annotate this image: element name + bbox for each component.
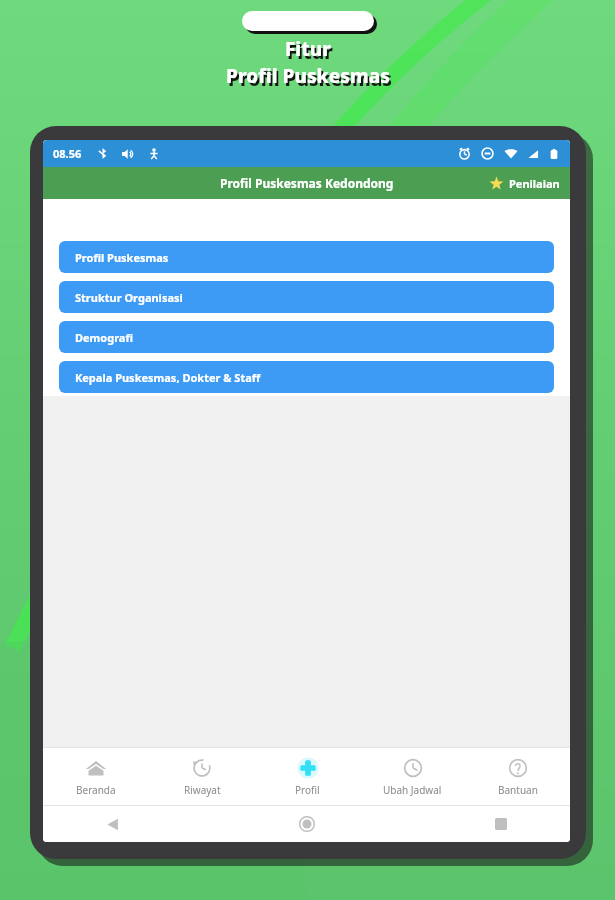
staticText: Kepala Puskesmas, Dokter & Staff <box>75 370 261 385</box>
staticText: Profil <box>295 783 320 797</box>
button[interactable]: Back <box>97 809 127 839</box>
staticText: Profil Puskesmas <box>226 63 390 89</box>
staticText: Ubah Jadwal <box>383 783 442 797</box>
staticText: Profil Puskesmas <box>228 66 392 92</box>
staticText: Bantuan <box>498 783 538 797</box>
staticText: Fitur <box>287 39 333 65</box>
button[interactable]: Struktur Organisasi <box>59 281 554 313</box>
staticText: Penilaian <box>509 176 560 191</box>
staticText: 08.56 <box>53 146 82 161</box>
button[interactable]: Kepala Puskesmas, Dokter & Staff <box>59 361 554 393</box>
button[interactable]: Riwayat <box>149 751 255 803</box>
button[interactable]: Bantuan <box>465 751 570 803</box>
button[interactable]: Ubah Jadwal <box>360 751 465 803</box>
button[interactable]: Demografi <box>59 321 554 353</box>
button[interactable]: Profil <box>255 751 360 803</box>
staticText: Demografi <box>75 330 133 345</box>
button[interactable]: Beranda <box>43 751 149 803</box>
staticText: Beranda <box>76 783 116 797</box>
button[interactable]: Home <box>292 809 322 839</box>
staticText: Fitur <box>285 36 331 62</box>
button[interactable]: Recents <box>486 809 516 839</box>
staticText: Riwayat <box>184 783 221 797</box>
button[interactable]: Penilaian <box>479 172 570 195</box>
staticText: Struktur Organisasi <box>75 290 183 305</box>
button[interactable]: Profil Puskesmas <box>59 241 554 273</box>
staticText: Profil Puskesmas Kedondong <box>220 175 394 191</box>
staticText: Profil Puskesmas <box>75 250 169 265</box>
